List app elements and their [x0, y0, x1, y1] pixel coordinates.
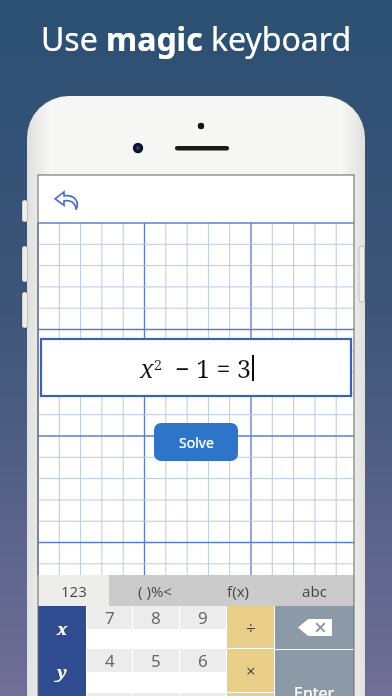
button[interactable]: x2 − 1 = 3 — [41, 339, 351, 396]
staticText: Use magic keyboard — [0, 17, 392, 61]
staticText: ( )%< — [138, 581, 172, 601]
staticText: 123 — [61, 581, 87, 601]
staticText: 5 — [151, 649, 161, 672]
button[interactable]: 9 — [180, 606, 226, 629]
button[interactable]: 123 — [38, 575, 109, 606]
button[interactable]: 6 — [180, 649, 226, 672]
button[interactable]: × — [227, 649, 274, 692]
staticText: × — [246, 659, 256, 682]
staticText: 8 — [151, 606, 161, 629]
staticText: abc — [302, 581, 327, 601]
staticText: 6 — [198, 649, 208, 672]
button[interactable]: 4 — [87, 649, 132, 672]
staticText: 7 — [105, 606, 115, 629]
button[interactable]: x — [38, 606, 86, 650]
staticText: Solve — [179, 433, 214, 452]
button[interactable]: ( )%< — [109, 575, 201, 606]
button[interactable]: f(x) — [201, 575, 275, 606]
button[interactable]: Solve — [154, 423, 238, 461]
button[interactable]: Enter — [275, 650, 354, 696]
button[interactable]: y — [38, 650, 86, 693]
button[interactable]: 5 — [133, 649, 179, 672]
staticText: y — [57, 660, 67, 683]
staticText: ÷ — [246, 616, 256, 639]
staticText: 4 — [105, 649, 115, 672]
staticText: 9 — [198, 606, 208, 629]
button[interactable]: Fraction — [38, 693, 86, 696]
staticText: f(x) — [227, 581, 250, 601]
button[interactable]: 8 — [133, 606, 179, 629]
button[interactable]: abc — [275, 575, 354, 606]
staticText: Enter — [294, 682, 335, 696]
button[interactable]: Undo — [52, 185, 82, 215]
button[interactable]: 7 — [87, 606, 132, 629]
button[interactable]: Backspace — [275, 606, 354, 649]
staticText: x2 − 1 = 3 — [140, 351, 251, 385]
staticText: x — [57, 617, 68, 640]
button[interactable]: ÷ — [227, 606, 274, 648]
